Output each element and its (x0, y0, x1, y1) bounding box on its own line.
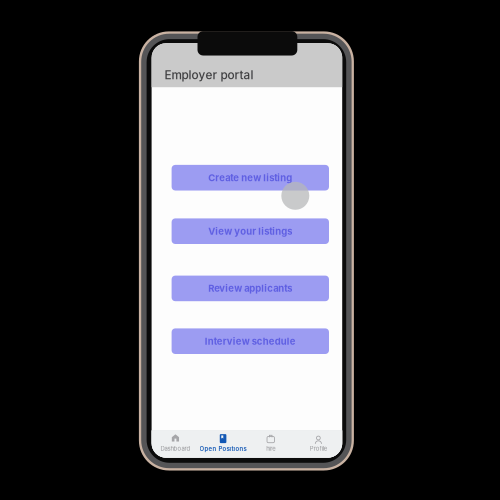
staticText: Interview schedule (205, 335, 296, 347)
button[interactable]: hire (247, 430, 294, 458)
staticText: hire (266, 445, 275, 452)
button[interactable]: Interview schedule (172, 328, 329, 354)
staticText: View your listings (208, 225, 292, 237)
staticText: Open Positions (200, 445, 247, 452)
button[interactable]: Open Positions (199, 430, 247, 458)
staticText: Dashboard (160, 445, 190, 452)
button[interactable]: Dashboard (152, 430, 199, 458)
button[interactable]: Review applicants (172, 276, 329, 301)
button[interactable]: View your listings (172, 218, 329, 244)
staticText: Create new listing (208, 172, 292, 183)
staticText: Review applicants (208, 283, 292, 294)
button[interactable]: Profile (294, 430, 342, 458)
button[interactable]: Create new listing (172, 165, 329, 190)
staticText: Employer portal (164, 68, 253, 82)
staticText: Profile (310, 445, 327, 452)
